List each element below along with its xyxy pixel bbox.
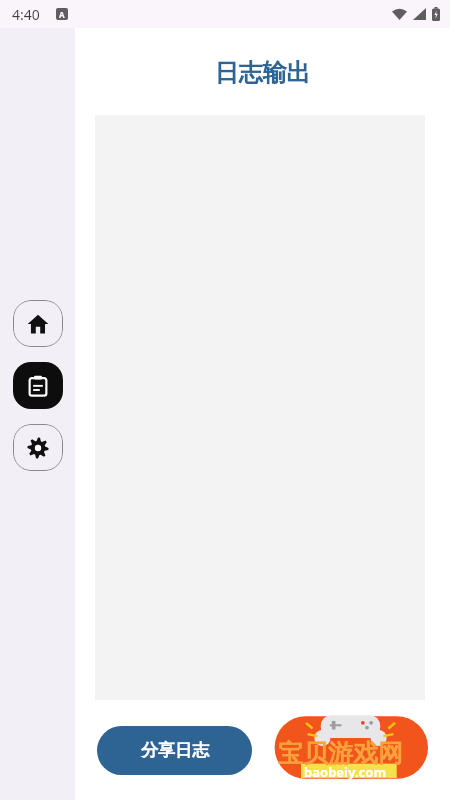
staticText: 日志输出: [75, 58, 450, 88]
staticText: 分享日志: [141, 740, 209, 761]
staticText: 4:40: [12, 5, 40, 24]
staticText: A: [59, 9, 65, 20]
button[interactable]: Settings: [13, 424, 63, 471]
button[interactable]: Home: [13, 300, 63, 347]
staticText: baobeiy.com: [304, 763, 387, 781]
button[interactable]: 分享日志: [97, 726, 252, 775]
button[interactable]: Logs: [13, 362, 63, 409]
staticText: 宝贝游戏网: [278, 738, 403, 769]
